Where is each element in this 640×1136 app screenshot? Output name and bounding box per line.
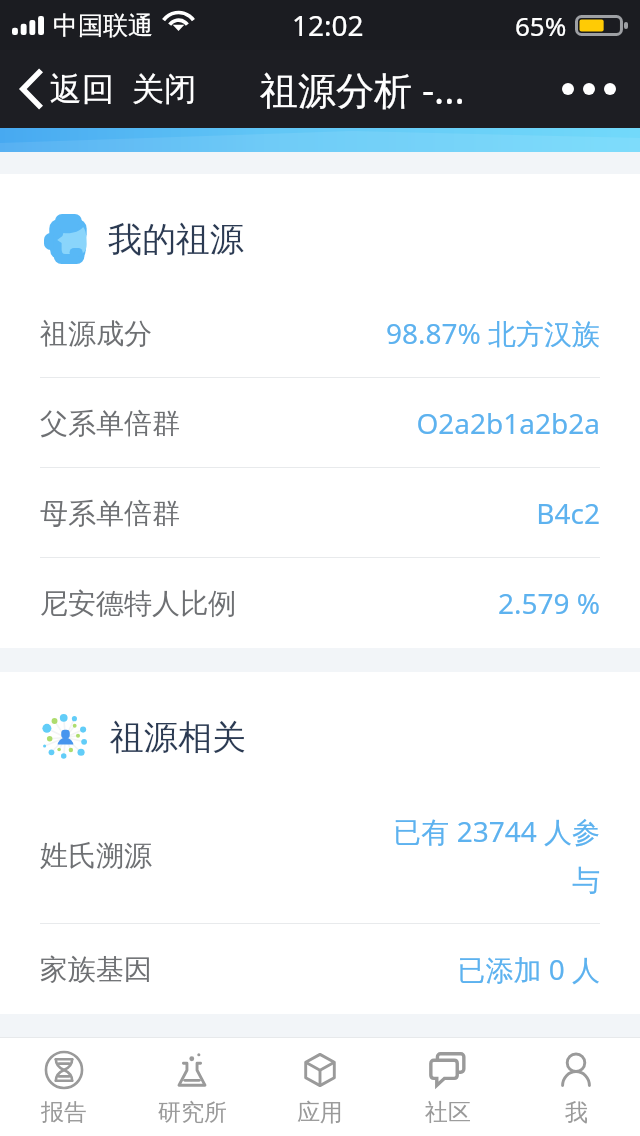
staticText: O2a2b1a2b2a xyxy=(416,404,600,442)
staticText: 祖源相关 xyxy=(110,716,246,759)
button[interactable]: 姓氏溯源 xyxy=(0,786,640,924)
staticText: 我 xyxy=(565,1098,588,1127)
staticText: 父系单倍群 xyxy=(40,406,180,441)
staticText: 家族基因 xyxy=(40,952,152,987)
staticText: 祖源成分 xyxy=(40,316,152,351)
staticText: 应用 xyxy=(297,1098,343,1127)
button[interactable]: 关闭 xyxy=(132,69,196,109)
button[interactable]: 母系单倍群 xyxy=(0,468,640,558)
staticText: 返回 xyxy=(50,69,114,109)
staticText: 我的祖源 xyxy=(108,218,244,261)
button[interactable]: 社区 xyxy=(384,1038,512,1136)
button[interactable]: 报告 xyxy=(0,1038,128,1136)
button[interactable]: 尼安德特人比例 xyxy=(0,558,640,648)
button[interactable]: 研究所 xyxy=(128,1038,256,1136)
staticText: 报告 xyxy=(41,1098,87,1127)
staticText: 社区 xyxy=(425,1098,471,1127)
staticText: 母系单倍群 xyxy=(40,496,180,531)
staticText: 65% xyxy=(515,8,567,43)
staticText: 已添加 0 人 xyxy=(457,950,600,988)
staticText: 研究所 xyxy=(158,1098,227,1127)
button[interactable]: 祖源成分 xyxy=(0,288,640,378)
button[interactable]: 我 xyxy=(512,1038,640,1136)
button[interactable]: 父系单倍群 xyxy=(0,378,640,468)
staticText: 98.87% 北方汉族 xyxy=(385,314,600,352)
staticText: 祖源分析 -... xyxy=(260,63,465,115)
staticText: 尼安德特人比例 xyxy=(40,586,236,621)
staticText: 姓氏溯源 xyxy=(40,838,152,873)
button[interactable]: 应用 xyxy=(256,1038,384,1136)
staticText: 2.579 % xyxy=(497,584,600,622)
staticText: 12:02 xyxy=(292,6,364,44)
button[interactable]: 家族基因 xyxy=(0,924,640,1014)
staticText: 已有 23744 人参与 xyxy=(388,812,600,898)
button[interactable]: More options xyxy=(562,83,616,95)
staticText: 中国联通 xyxy=(53,10,153,41)
staticText: 关闭 xyxy=(132,69,196,109)
button[interactable]: Back xyxy=(18,69,114,109)
staticText: B4c2 xyxy=(536,494,600,532)
